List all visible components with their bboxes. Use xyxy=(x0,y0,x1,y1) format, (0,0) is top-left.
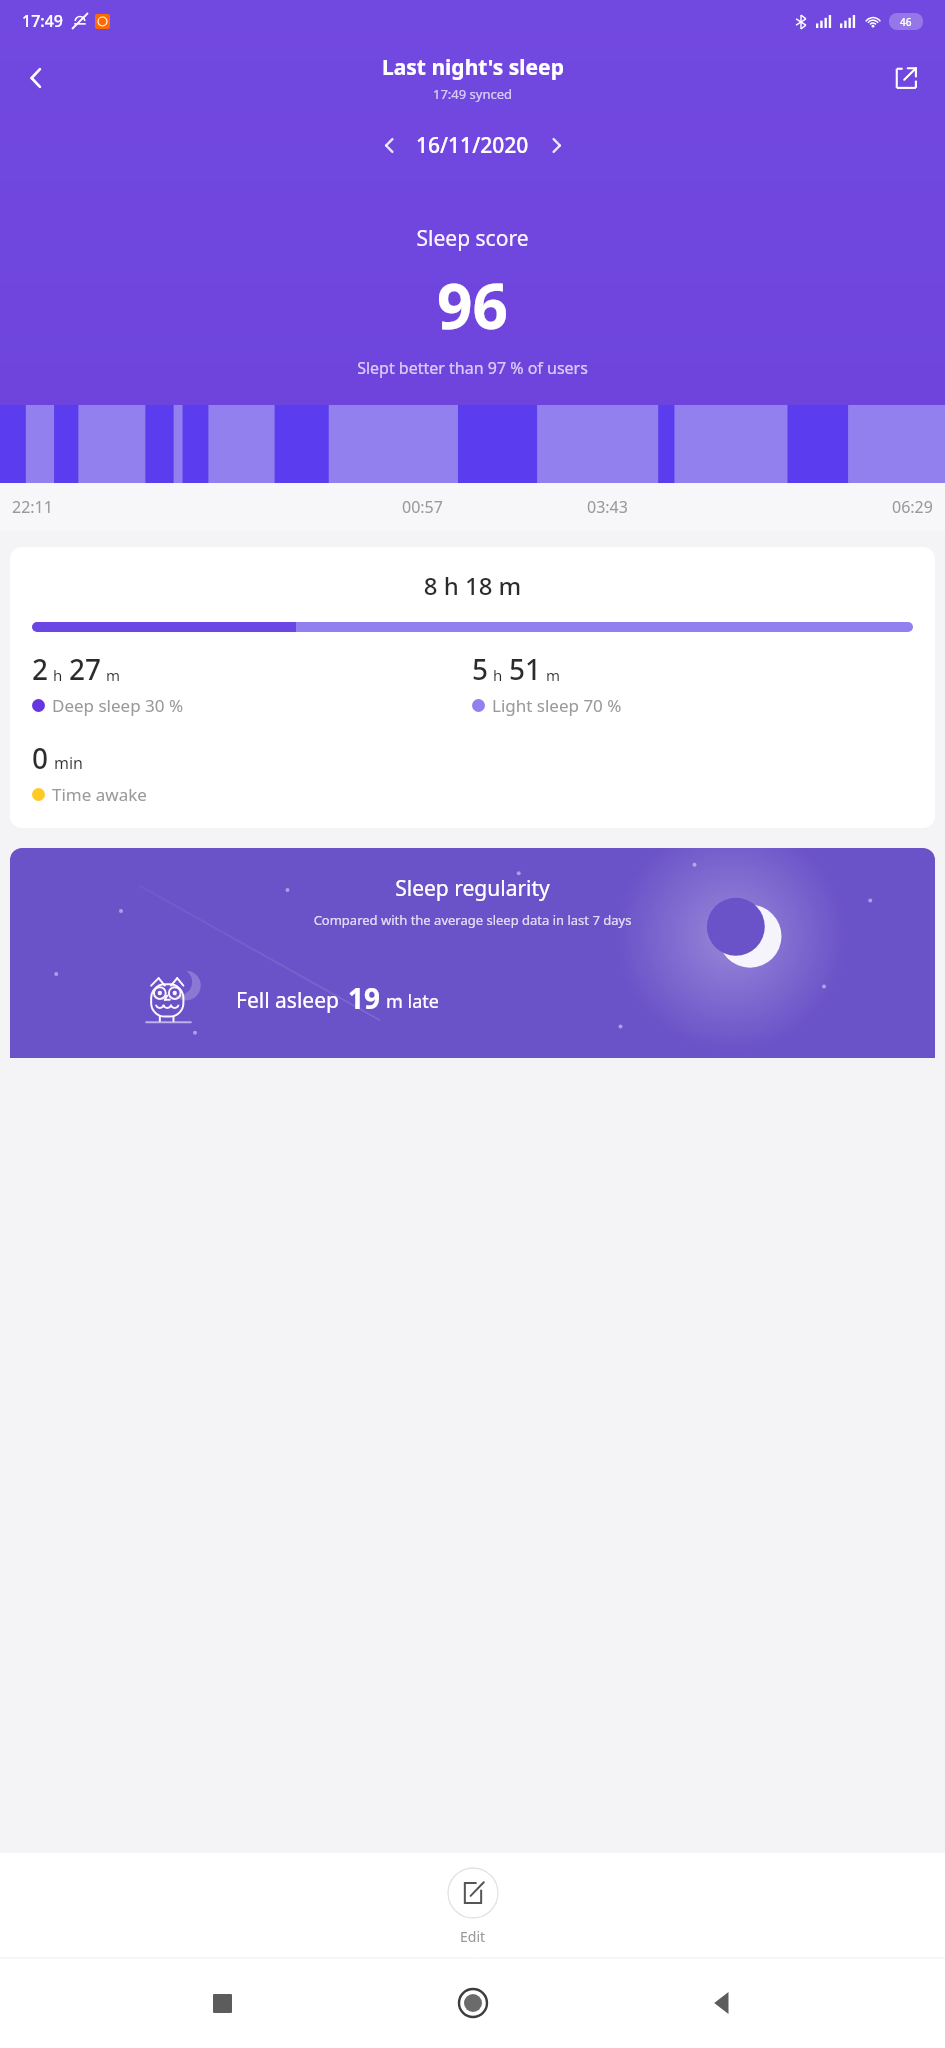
staticText: 16/11/2020 xyxy=(416,131,529,160)
button[interactable]: Edit xyxy=(0,1867,945,1946)
button[interactable]: Back xyxy=(695,1975,751,2031)
staticText: Time awake xyxy=(52,783,147,806)
button[interactable]: Share xyxy=(881,53,931,103)
button[interactable]: Home xyxy=(445,1975,501,2031)
button[interactable]: Sleep regularity xyxy=(10,848,935,1058)
staticText: 8 h 18 m xyxy=(32,569,913,602)
button[interactable]: 8 h 18 m xyxy=(10,547,935,828)
staticText: 17:49 synced xyxy=(433,85,513,103)
staticText: m xyxy=(546,665,561,685)
staticText: Last night's sleep xyxy=(382,53,564,82)
button[interactable]: Previous day xyxy=(368,124,410,166)
button[interactable]: Recents xyxy=(194,1975,250,2031)
staticText: 00:57 xyxy=(402,496,443,518)
staticText: 22:11 xyxy=(12,496,53,518)
staticText: 0 xyxy=(32,739,49,777)
staticText: 06:29 xyxy=(892,496,933,518)
staticText: h xyxy=(53,665,63,685)
button[interactable]: Back xyxy=(8,50,64,106)
staticText: 27 xyxy=(69,650,102,688)
staticText: Deep sleep 30 % xyxy=(52,694,184,717)
staticText: Edit xyxy=(460,1927,486,1946)
button[interactable]: Next day xyxy=(535,124,577,166)
staticText: m xyxy=(106,665,121,685)
other: Edit xyxy=(447,1867,499,1919)
staticText: 19 xyxy=(348,979,381,1017)
staticText: Light sleep 70 % xyxy=(492,694,622,717)
staticText: 03:43 xyxy=(587,496,628,518)
staticText: h xyxy=(493,665,503,685)
staticText: Slept better than 97 % of users xyxy=(0,357,945,379)
staticText: 51 xyxy=(509,650,542,688)
staticText: 96 xyxy=(0,263,945,347)
staticText: Sleep score xyxy=(0,224,945,253)
staticText: Compared with the average sleep data in … xyxy=(10,911,935,929)
staticText: 46 xyxy=(900,15,912,29)
staticText: 5 xyxy=(472,650,489,688)
staticText: m late xyxy=(386,989,439,1014)
staticText: min xyxy=(54,752,83,774)
staticText: Fell asleep xyxy=(236,986,339,1015)
staticText: 2 xyxy=(32,650,49,688)
staticText: Sleep regularity xyxy=(10,874,935,903)
staticText: 17:49 xyxy=(22,10,63,32)
